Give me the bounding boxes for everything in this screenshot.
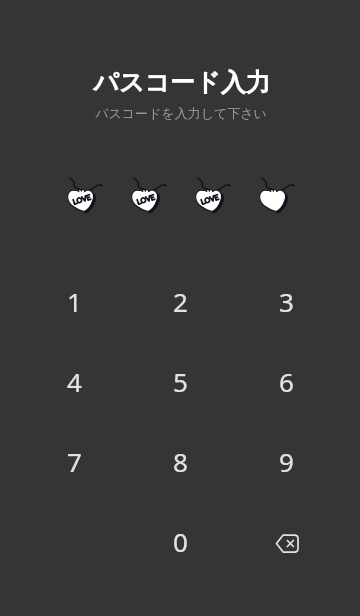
staticText: 5 [173, 364, 188, 399]
staticText: 4 [67, 364, 82, 399]
button[interactable]: 9 [242, 428, 330, 494]
button[interactable]: 8 [136, 428, 224, 494]
button[interactable]: 2 [136, 268, 224, 334]
button[interactable]: 6 [242, 348, 330, 414]
staticText: 9 [279, 444, 294, 479]
button[interactable]: 5 [136, 348, 224, 414]
staticText: 7 [67, 444, 82, 479]
staticText: 3 [279, 284, 294, 319]
button[interactable]: 0 [136, 508, 224, 574]
staticText: 1 [67, 284, 82, 319]
button[interactable]: 3 [242, 268, 330, 334]
staticText: 2 [173, 284, 188, 319]
button[interactable]: Delete [242, 508, 330, 574]
staticText: 6 [279, 364, 294, 399]
button[interactable]: 4 [30, 348, 118, 414]
staticText: 0 [173, 524, 188, 559]
staticText: パスコード入力 [93, 67, 271, 98]
button[interactable]: 1 [30, 268, 118, 334]
other: Delete [275, 534, 299, 553]
staticText: 8 [173, 444, 188, 479]
staticText: パスコードを入力して下さい [95, 105, 267, 121]
button[interactable]: 7 [30, 428, 118, 494]
